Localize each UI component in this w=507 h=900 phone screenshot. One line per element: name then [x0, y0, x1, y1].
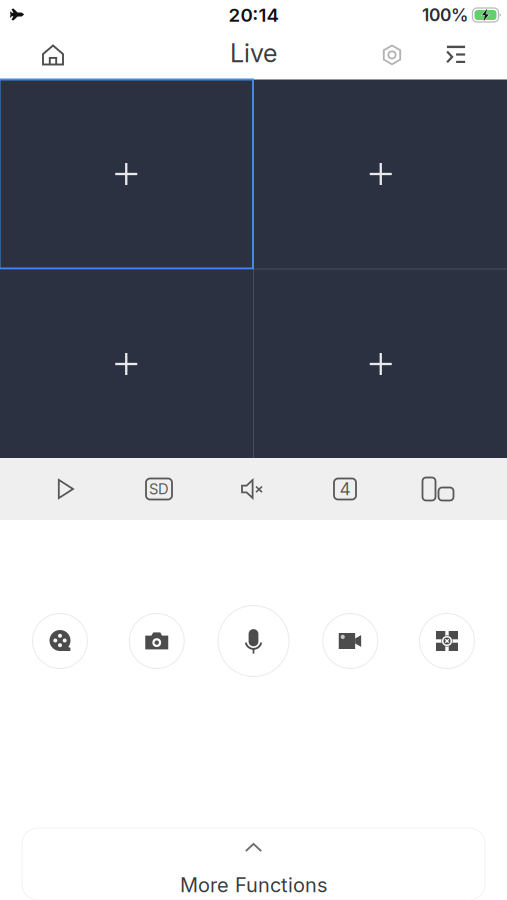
button[interactable]: Snapshot — [117, 601, 197, 681]
button[interactable]: Playback — [20, 601, 100, 681]
button[interactable]: Record — [310, 601, 390, 681]
staticText: More Functions — [180, 873, 327, 897]
staticText: Live — [230, 38, 277, 68]
staticText: SD — [149, 480, 169, 498]
button[interactable]: Settings — [367, 30, 417, 80]
button[interactable]: PTZ control — [407, 601, 487, 681]
button[interactable]: More Functions — [22, 828, 485, 900]
button[interactable]: Mute — [221, 458, 283, 520]
button[interactable]: Device list — [431, 30, 481, 80]
button[interactable]: Add camera — [254, 269, 507, 458]
button[interactable]: Add camera — [254, 79, 507, 268]
button[interactable]: Home — [30, 30, 76, 80]
button[interactable]: Play — [35, 458, 97, 520]
button[interactable]: Rotate — [407, 458, 469, 520]
button[interactable]: Talk — [213, 601, 293, 681]
button[interactable]: Add camera — [0, 269, 253, 458]
button[interactable]: Add camera — [0, 79, 253, 268]
staticText: 20:14 — [228, 4, 278, 26]
button[interactable]: Split screen layout — [314, 458, 376, 520]
staticText: 100% — [422, 4, 468, 25]
button[interactable]: Stream quality — [128, 458, 190, 520]
staticText: 4 — [339, 478, 350, 499]
